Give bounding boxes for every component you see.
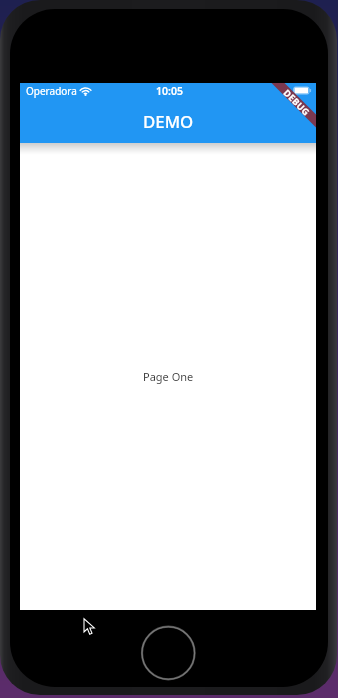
staticText: DEBUG xyxy=(281,86,313,118)
staticText: Operadora xyxy=(26,84,77,98)
staticText: Page One xyxy=(143,369,194,384)
staticText: DEMO xyxy=(143,110,194,133)
staticText: 10:05 xyxy=(156,84,183,98)
other: Battery xyxy=(293,86,312,95)
button[interactable]: DEMO xyxy=(20,99,316,143)
other: Wi-Fi xyxy=(80,87,91,96)
other: Home xyxy=(0,0,337,695)
